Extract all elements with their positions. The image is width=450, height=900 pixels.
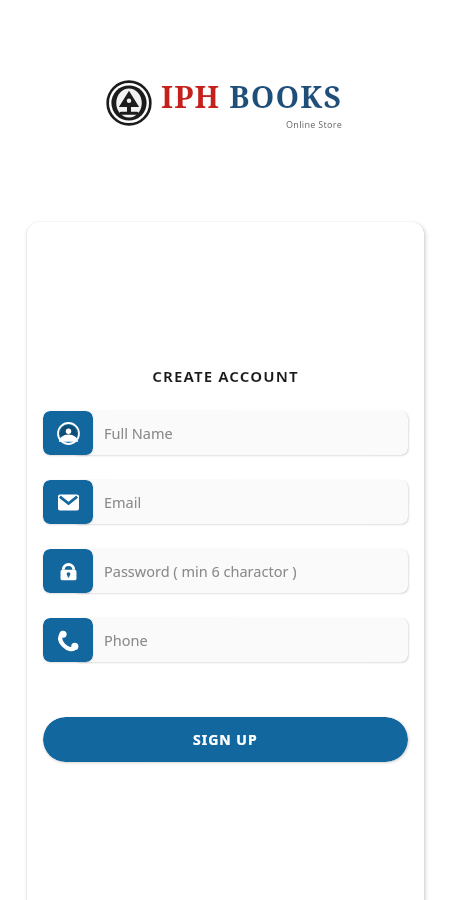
other: Email: [43, 480, 93, 524]
staticText: Email: [104, 492, 142, 512]
staticText: CREATE ACCOUNT: [152, 366, 299, 386]
button[interactable]: Password ( min 6 charactor ): [43, 549, 408, 593]
other: Password ( min 6 charactor ): [43, 549, 93, 593]
staticText: Full Name: [104, 423, 173, 443]
staticText: Phone: [104, 630, 148, 650]
other: Phone: [43, 618, 93, 662]
staticText: Online Store: [286, 118, 343, 130]
button[interactable]: Full Name: [43, 411, 408, 455]
button[interactable]: Phone: [43, 618, 408, 662]
button[interactable]: SIGN UP: [43, 717, 408, 762]
other: Full Name: [43, 411, 93, 455]
staticText: Password ( min 6 charactor ): [104, 561, 297, 581]
staticText: IPH BOOKS: [161, 76, 343, 117]
staticText: SIGN UP: [193, 730, 258, 749]
other: IPH Books logo: [107, 81, 151, 125]
button[interactable]: Email: [43, 480, 408, 524]
